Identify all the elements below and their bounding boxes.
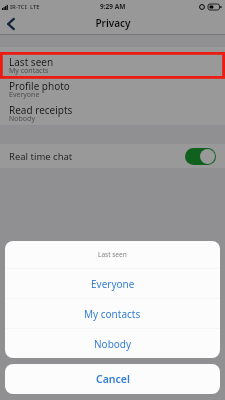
staticText: Nobody xyxy=(94,337,132,351)
staticText: My contacts xyxy=(84,307,141,321)
staticText: Everyone xyxy=(91,277,135,291)
staticText: Last seen xyxy=(98,250,127,259)
button[interactable]: Profile photo xyxy=(0,74,225,98)
button[interactable]: Nobody xyxy=(5,329,220,358)
button[interactable]: Last seen xyxy=(0,50,225,74)
button[interactable]: Everyone xyxy=(5,269,220,298)
staticText: Last seen xyxy=(9,55,54,69)
button[interactable]: Read receipts xyxy=(0,98,225,122)
staticText: Read receipts xyxy=(9,103,73,117)
staticText: Real time chat xyxy=(9,150,73,163)
staticText: IR-TCI LTE xyxy=(10,3,40,11)
staticText: Everyone xyxy=(9,90,40,100)
button[interactable]: Real time chat xyxy=(0,144,225,168)
button[interactable]: My contacts xyxy=(5,299,220,328)
staticText: Nobody xyxy=(9,114,35,124)
staticText: 9:29 AM xyxy=(100,2,126,11)
button[interactable]: Cancel xyxy=(5,364,220,394)
staticText: My contacts xyxy=(9,66,49,76)
staticText: Profile photo xyxy=(9,79,70,93)
staticText: Privacy xyxy=(95,16,131,30)
button[interactable]: Back xyxy=(0,13,22,35)
staticText: Cancel xyxy=(96,372,130,386)
